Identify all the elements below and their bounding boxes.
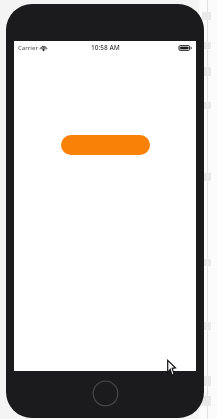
button[interactable]: Orange button [61,135,150,155]
staticText: Carrier [18,44,38,52]
button[interactable]: Home [92,380,119,407]
staticText: 10:58 AM [91,43,120,52]
